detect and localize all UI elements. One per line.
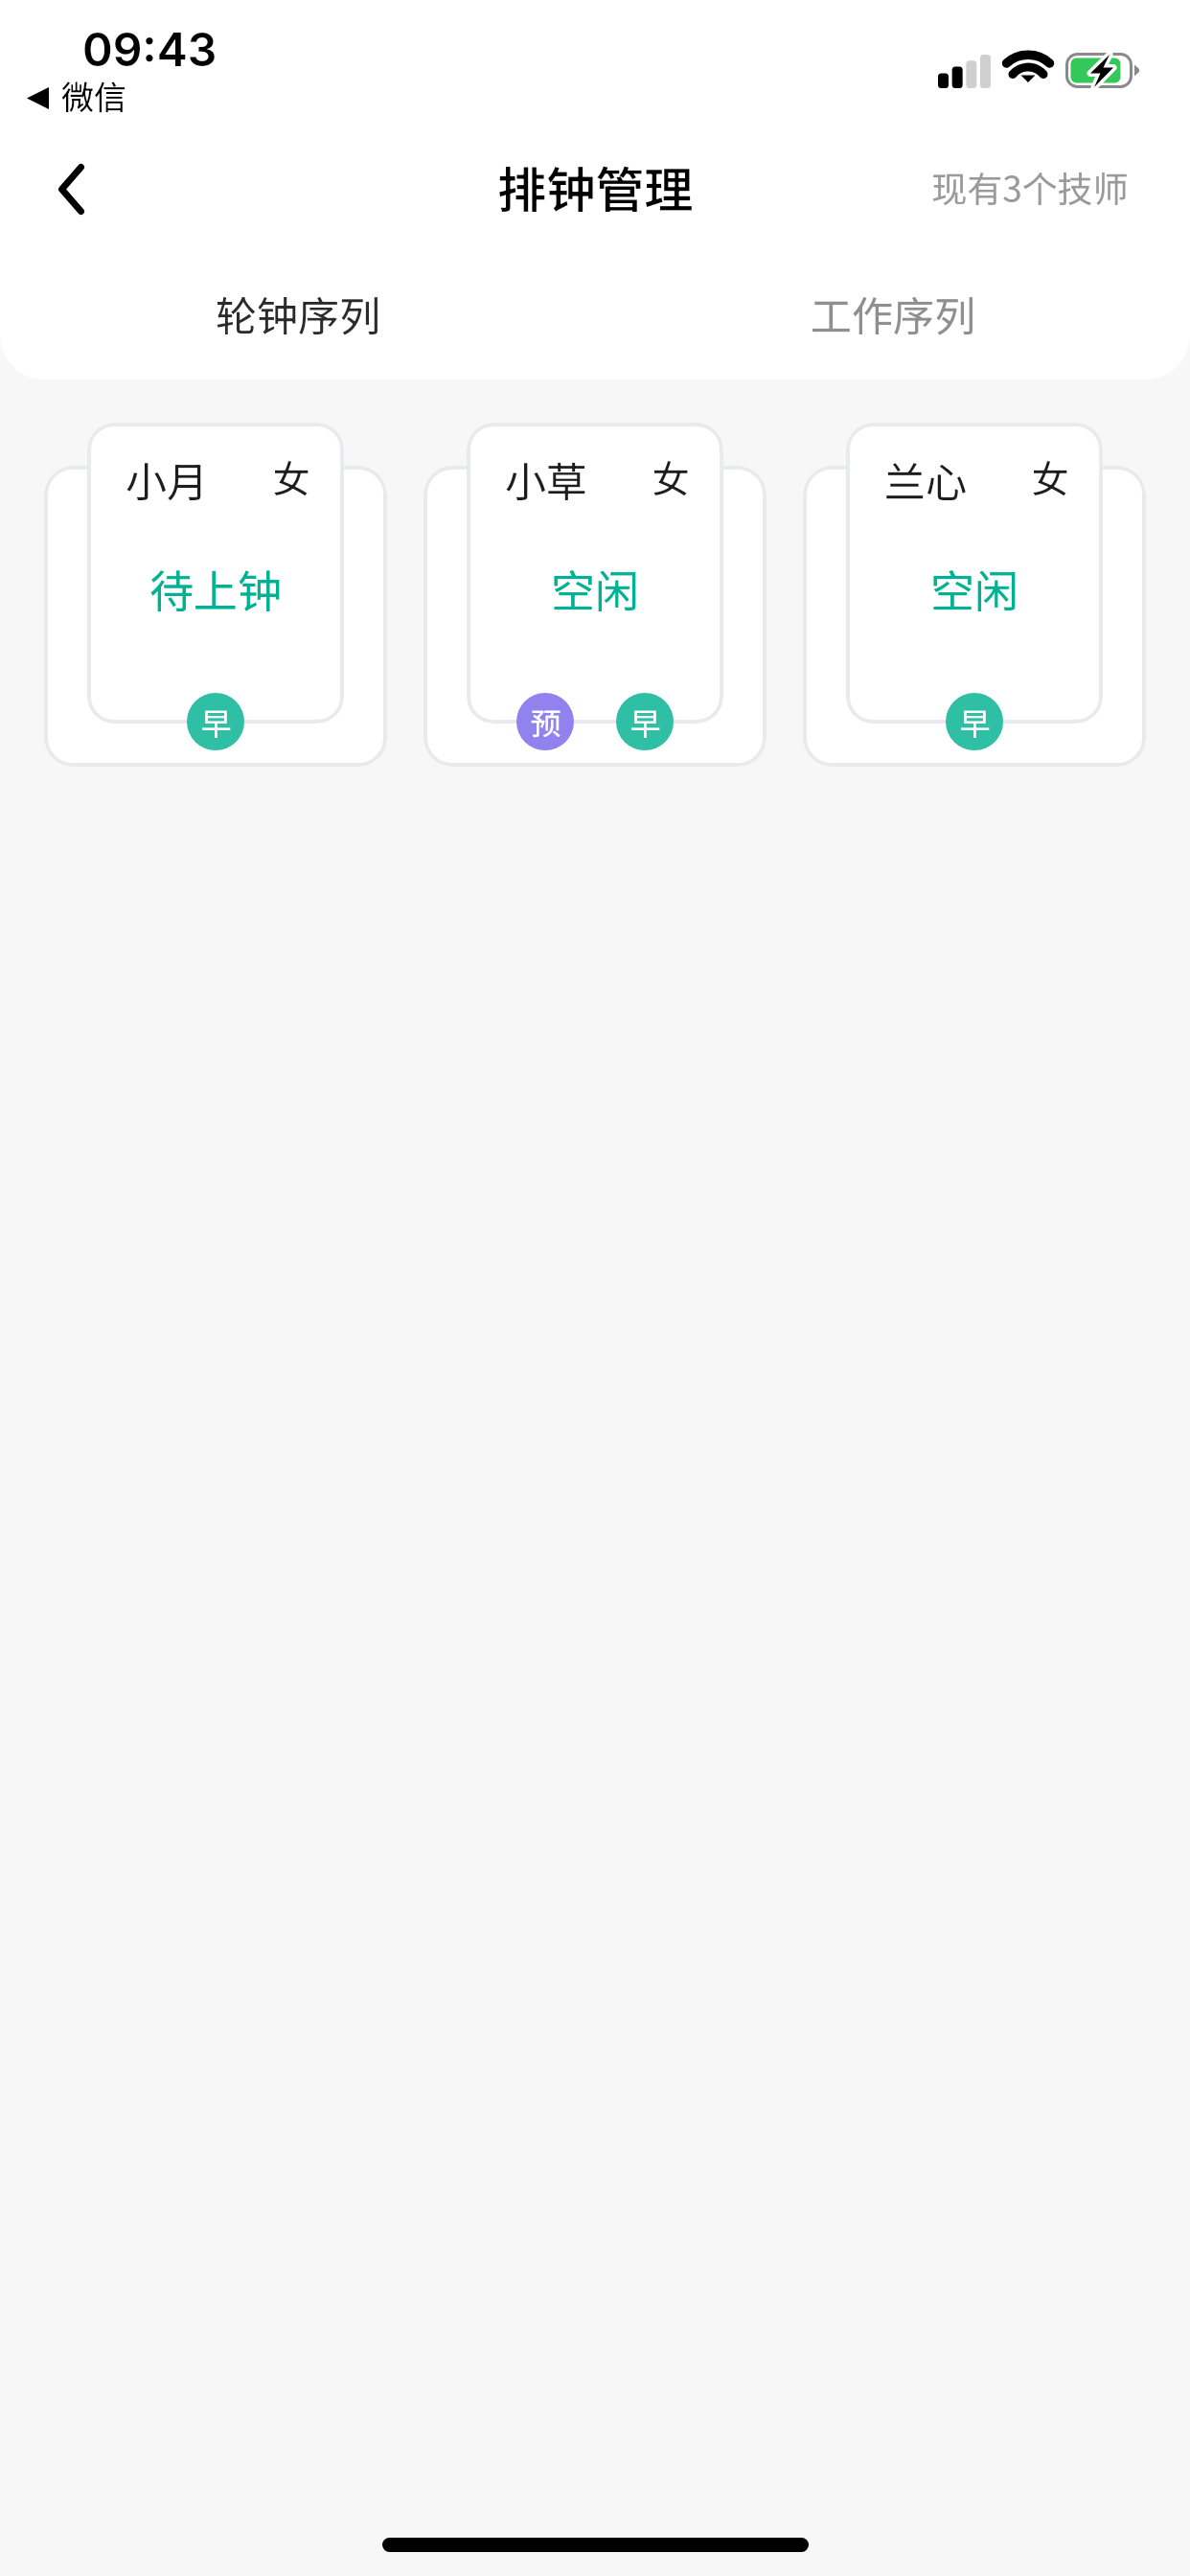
- button[interactable]: 工作序列: [595, 274, 1190, 353]
- staticText: 轮钟序列: [216, 284, 380, 343]
- button[interactable]: 早: [616, 693, 674, 750]
- staticText: 工作序列: [811, 284, 975, 343]
- staticText: 待上钟: [149, 557, 282, 621]
- staticText: 早: [629, 700, 661, 744]
- staticText: 女: [272, 449, 310, 503]
- staticText: 小草: [505, 449, 587, 509]
- button[interactable]: 预: [516, 693, 574, 750]
- button[interactable]: 早: [946, 693, 1003, 750]
- staticText: 女: [1031, 449, 1069, 503]
- button[interactable]: 微信: [27, 72, 126, 119]
- button[interactable]: 小草: [423, 423, 767, 767]
- staticText: 现有3个技师: [931, 161, 1129, 213]
- button[interactable]: 现有3个技师: [920, 153, 1140, 220]
- staticText: 微信: [61, 72, 126, 119]
- staticText: 空闲: [930, 557, 1018, 621]
- button[interactable]: 兰心: [803, 423, 1146, 767]
- staticText: 早: [959, 700, 991, 744]
- button[interactable]: Back: [15, 142, 111, 238]
- staticText: 空闲: [551, 557, 639, 621]
- staticText: 女: [652, 449, 690, 503]
- staticText: 预: [530, 700, 561, 744]
- button[interactable]: 轮钟序列: [0, 274, 595, 353]
- staticText: 兰心: [884, 449, 967, 509]
- button[interactable]: 小月: [44, 423, 387, 767]
- staticText: 小月: [126, 449, 208, 509]
- staticText: 排钟管理: [497, 151, 694, 222]
- staticText: 早: [200, 700, 232, 744]
- button[interactable]: 早: [187, 693, 244, 750]
- staticText: 09:43: [82, 21, 217, 77]
